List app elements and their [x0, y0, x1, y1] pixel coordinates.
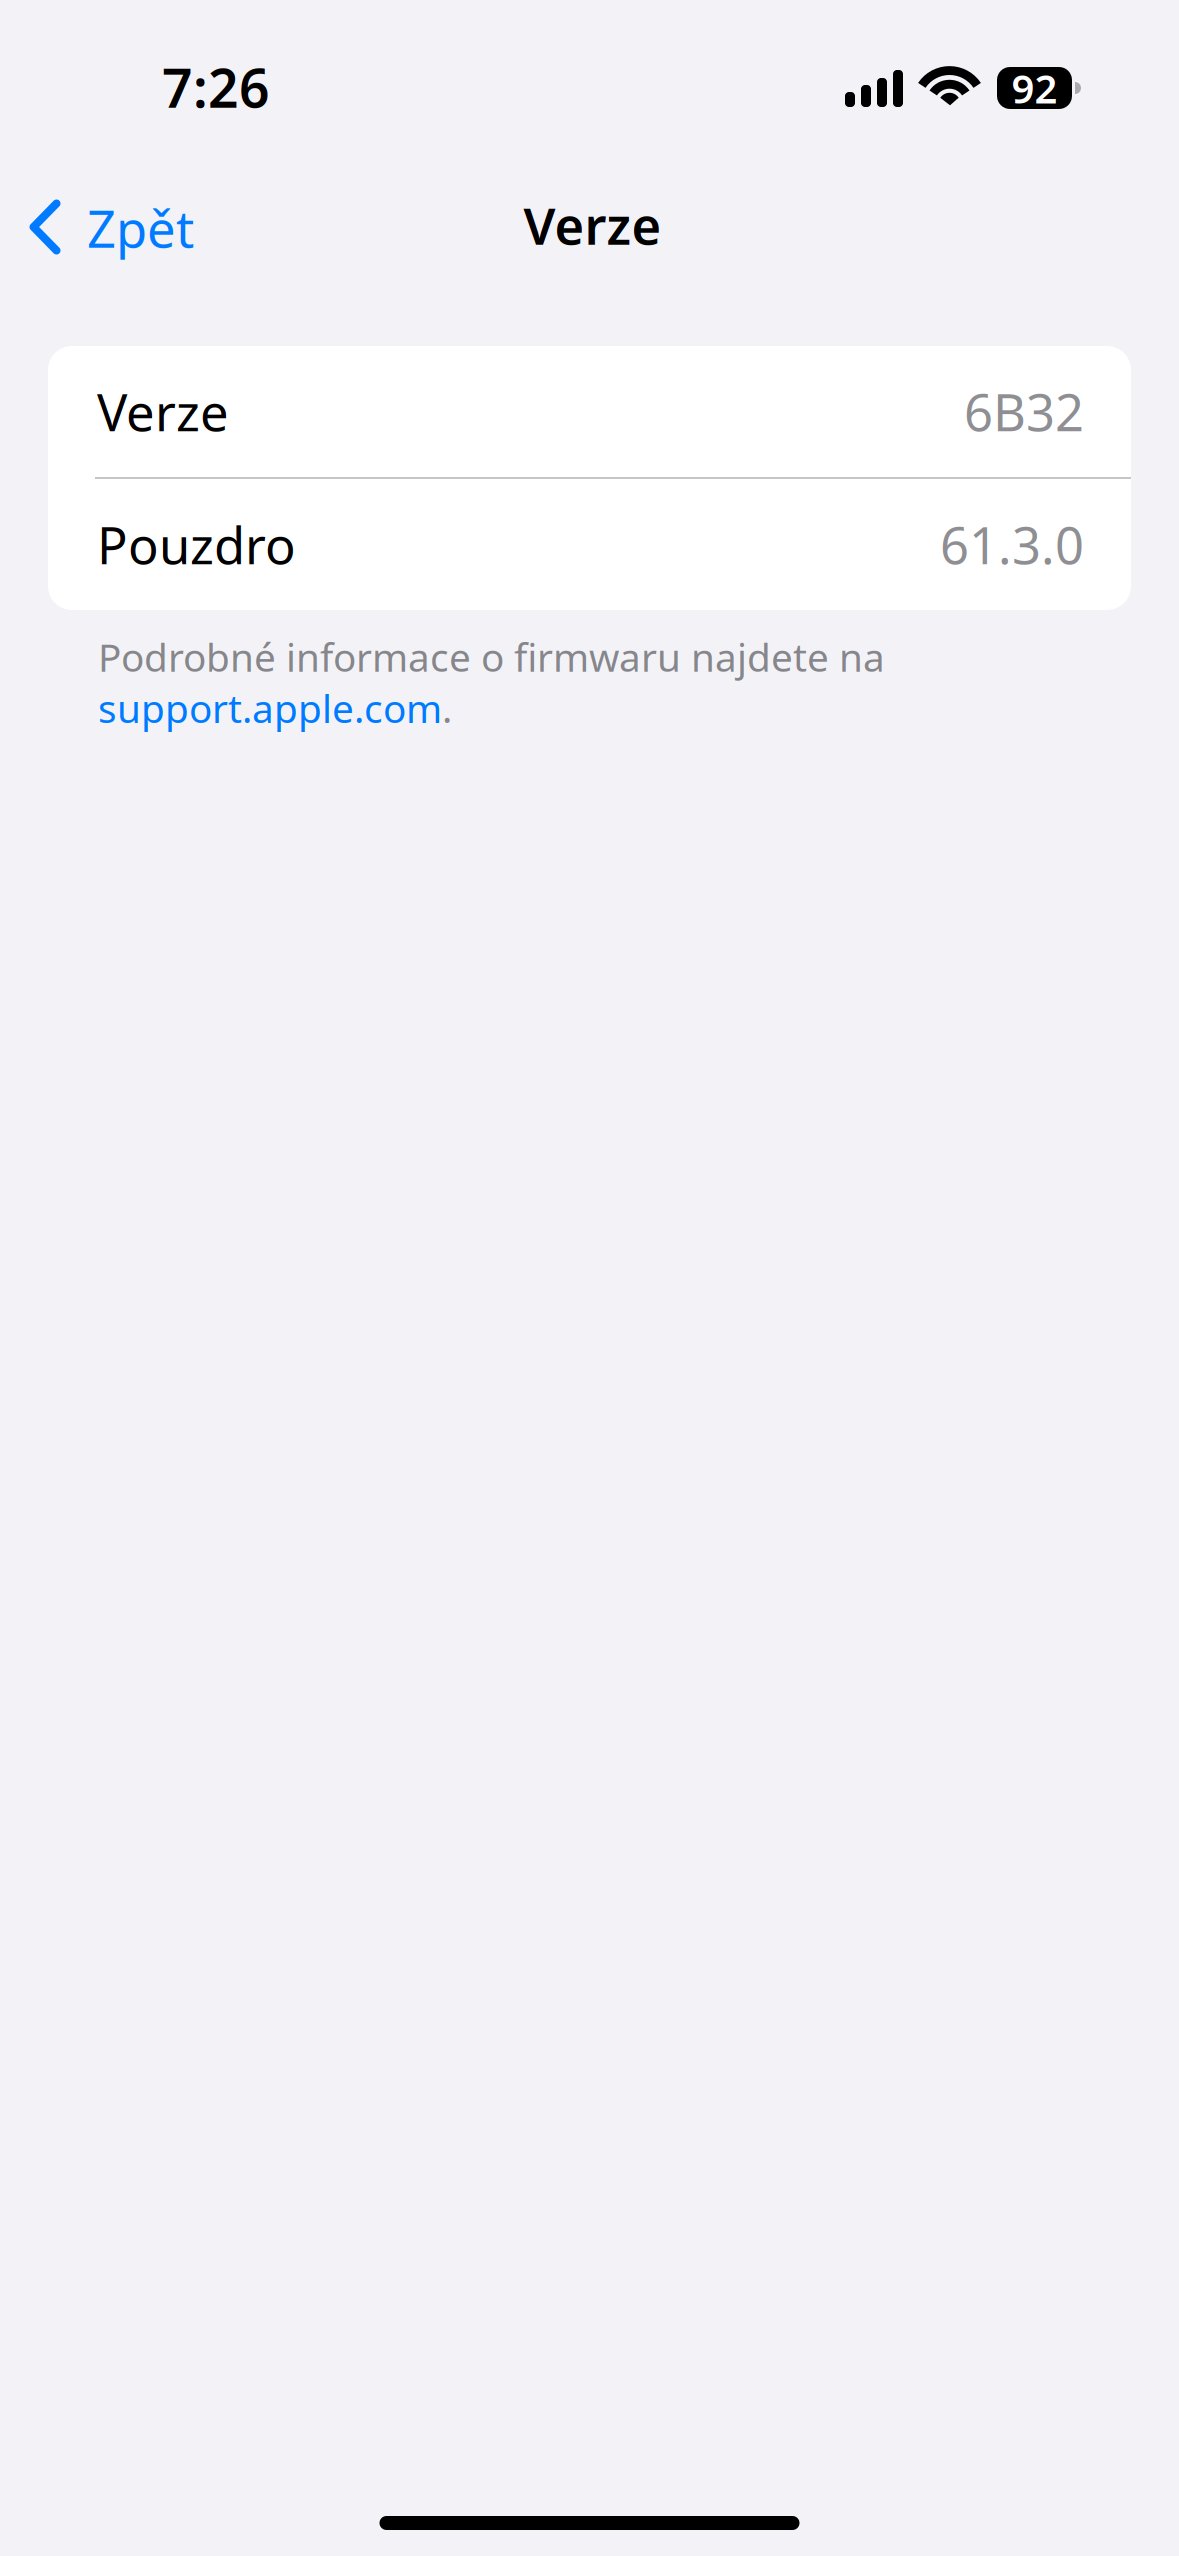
staticText: Zpět: [87, 194, 194, 262]
staticText: 6B32: [964, 378, 1084, 445]
button[interactable]: support.apple.com: [98, 682, 442, 734]
staticText: support.apple.com: [98, 682, 442, 734]
staticText: Verze: [97, 378, 229, 445]
button[interactable]: Zpět: [0, 186, 214, 274]
staticText: Pouzdro: [97, 511, 296, 578]
staticText: 92: [1011, 61, 1057, 114]
staticText: 61.3.0: [940, 511, 1084, 578]
staticText: 7:26: [162, 52, 270, 122]
staticText: .: [442, 682, 452, 734]
staticText: Podrobné informace o firmwaru najdete na: [98, 631, 885, 682]
staticText: Verze: [523, 191, 661, 259]
